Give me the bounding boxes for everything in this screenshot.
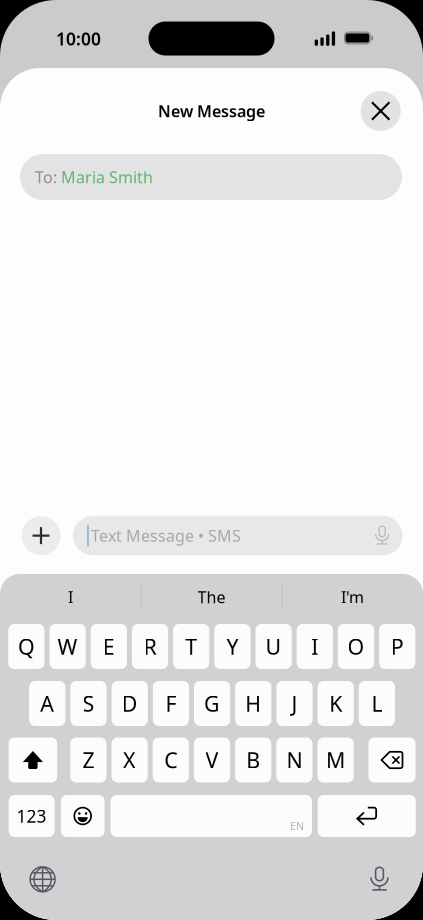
button[interactable]: N bbox=[276, 737, 312, 782]
staticText: X bbox=[123, 746, 136, 774]
staticText: K bbox=[329, 689, 342, 718]
staticText: I bbox=[68, 586, 73, 608]
staticText: Z bbox=[82, 746, 94, 774]
staticText: L bbox=[371, 689, 382, 718]
button[interactable]: T bbox=[173, 624, 209, 669]
button[interactable]: space bbox=[111, 795, 312, 837]
button[interactable]: Delete bbox=[368, 737, 415, 782]
button[interactable]: Y bbox=[214, 624, 250, 669]
button[interactable]: L bbox=[359, 681, 395, 726]
button[interactable]: R bbox=[132, 624, 168, 669]
button[interactable]: W bbox=[49, 624, 86, 669]
button[interactable]: E bbox=[91, 624, 127, 669]
button[interactable]: Next keyboard bbox=[20, 856, 66, 902]
staticText: O bbox=[347, 632, 364, 661]
staticText: D bbox=[122, 689, 138, 718]
staticText: H bbox=[245, 689, 261, 718]
staticText: V bbox=[205, 746, 218, 774]
button[interactable]: I bbox=[297, 624, 333, 669]
button[interactable]: V bbox=[194, 737, 230, 782]
staticText: 10:00 bbox=[56, 27, 101, 50]
staticText: G bbox=[204, 689, 220, 718]
staticText: W bbox=[58, 632, 78, 661]
button[interactable]: 123 bbox=[9, 795, 55, 837]
staticText: New Message bbox=[158, 100, 265, 122]
button[interactable]: K bbox=[318, 681, 354, 726]
staticText: Q bbox=[18, 632, 35, 661]
staticText: T bbox=[185, 632, 197, 661]
button[interactable]: return bbox=[318, 795, 416, 837]
button[interactable]: A bbox=[29, 681, 65, 726]
button[interactable]: B bbox=[235, 737, 271, 782]
button[interactable]: I bbox=[0, 574, 141, 620]
staticText: B bbox=[246, 746, 260, 774]
staticText: A bbox=[40, 689, 54, 718]
staticText: 123 bbox=[17, 804, 47, 827]
button[interactable]: M bbox=[317, 737, 354, 782]
button[interactable]: X bbox=[111, 737, 148, 782]
button[interactable]: Add attachment bbox=[19, 514, 63, 558]
staticText: J bbox=[291, 689, 297, 718]
button[interactable]: I'm bbox=[282, 574, 423, 620]
button[interactable]: C bbox=[153, 737, 189, 782]
button[interactable]: Q bbox=[8, 624, 44, 669]
button[interactable]: Shift bbox=[9, 737, 57, 782]
button[interactable]: Dictate bbox=[356, 856, 402, 902]
staticText: I bbox=[311, 632, 318, 661]
staticText: C bbox=[164, 746, 177, 774]
button[interactable]: S bbox=[70, 681, 107, 726]
staticText: E bbox=[103, 632, 115, 661]
staticText: Text Message • SMS bbox=[91, 525, 241, 546]
staticText: The bbox=[197, 586, 225, 608]
staticText: EN bbox=[290, 819, 304, 833]
button[interactable]: J bbox=[276, 681, 313, 726]
staticText: N bbox=[286, 746, 302, 774]
staticText: F bbox=[165, 689, 176, 718]
button[interactable]: F bbox=[153, 681, 189, 726]
staticText: U bbox=[266, 632, 282, 661]
staticText: I'm bbox=[341, 586, 364, 608]
button[interactable]: G bbox=[194, 681, 230, 726]
staticText: Y bbox=[226, 632, 238, 661]
button[interactable]: D bbox=[112, 681, 148, 726]
button[interactable]: Emoji bbox=[61, 795, 105, 837]
staticText: M bbox=[326, 746, 345, 774]
button[interactable]: Z bbox=[70, 737, 106, 782]
button[interactable]: U bbox=[255, 624, 292, 669]
button[interactable]: Close bbox=[359, 89, 403, 133]
staticText: R bbox=[143, 632, 156, 661]
button[interactable]: H bbox=[235, 681, 271, 726]
button[interactable]: O bbox=[338, 624, 374, 669]
staticText: To: bbox=[35, 166, 57, 188]
button[interactable]: P bbox=[379, 624, 415, 669]
staticText: Maria Smith bbox=[61, 166, 153, 188]
button[interactable]: The bbox=[141, 574, 282, 620]
staticText: S bbox=[82, 689, 94, 718]
staticText: P bbox=[391, 632, 404, 661]
